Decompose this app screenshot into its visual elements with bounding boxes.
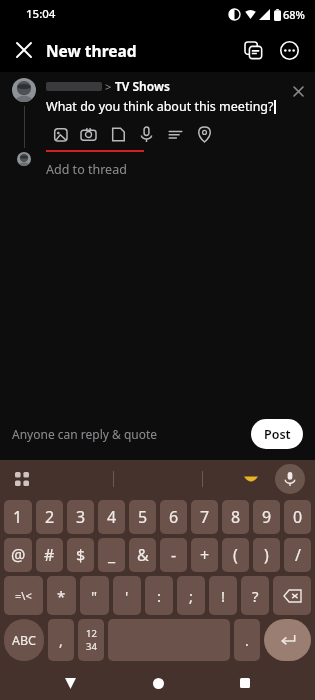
button[interactable]: 0 xyxy=(284,500,311,534)
button[interactable]: Post xyxy=(251,419,303,449)
button[interactable]: Back xyxy=(53,666,87,700)
staticText: 0 xyxy=(293,506,303,528)
button[interactable]: ? xyxy=(241,576,269,615)
button[interactable]: Backspace xyxy=(273,576,311,615)
staticText: 12 xyxy=(86,627,97,640)
staticText: + xyxy=(200,544,210,566)
button[interactable]: ! xyxy=(209,576,237,615)
staticText: 5 xyxy=(138,506,148,528)
staticText: @ xyxy=(11,544,26,566)
staticText: 15:04 xyxy=(26,6,56,22)
staticText: ' xyxy=(125,586,129,606)
button[interactable]: # xyxy=(36,538,63,572)
staticText: ? xyxy=(252,586,259,606)
button[interactable]: 6 xyxy=(160,500,187,534)
staticText: ; xyxy=(189,586,194,606)
button[interactable]: / xyxy=(284,538,311,572)
staticText: , xyxy=(59,631,63,650)
staticText: 6 xyxy=(169,506,179,528)
staticText: Post xyxy=(264,426,291,443)
button[interactable]: Location xyxy=(191,121,217,147)
staticText: New thread xyxy=(46,40,137,61)
button[interactable]: More options xyxy=(273,34,305,66)
staticText: 8 xyxy=(231,506,241,528)
staticText: & xyxy=(137,544,149,566)
button[interactable]: ABC xyxy=(4,619,44,661)
button[interactable]: Anyone can reply & quote xyxy=(12,426,158,442)
button[interactable]: + xyxy=(191,538,218,572)
button[interactable]: Recents xyxy=(228,666,262,700)
staticText: _ xyxy=(108,544,116,566)
button[interactable]: Emoji xyxy=(239,467,263,491)
button[interactable]: - xyxy=(160,538,187,572)
button[interactable]: Remove xyxy=(287,80,309,102)
button[interactable]: Poll xyxy=(162,121,188,147)
staticText: 4 xyxy=(107,506,117,528)
staticText: $ xyxy=(76,544,86,566)
button[interactable]: 2 xyxy=(36,500,63,534)
button[interactable]: $ xyxy=(67,538,94,572)
staticText: What do you think about this meeting? xyxy=(46,98,274,115)
staticText: 3 xyxy=(76,506,86,528)
button[interactable]: . xyxy=(234,619,260,661)
button[interactable]: Enter xyxy=(264,619,311,661)
button[interactable]: 3 xyxy=(67,500,94,534)
staticText: > xyxy=(105,79,112,94)
staticText: # xyxy=(44,544,55,566)
button[interactable]: ; xyxy=(177,576,205,615)
staticText: 1 xyxy=(13,506,23,528)
staticText: TV Shows xyxy=(115,78,170,94)
button[interactable]: 4 xyxy=(98,500,125,534)
staticText: =\< xyxy=(15,588,32,603)
button[interactable]: ) xyxy=(253,538,280,572)
button[interactable]: Keyboard options xyxy=(8,465,36,493)
button[interactable]: , xyxy=(48,619,74,661)
staticText: 9 xyxy=(262,506,272,528)
button[interactable]: 1 xyxy=(4,500,32,534)
button[interactable]: 7 xyxy=(191,500,218,534)
staticText: 2 xyxy=(45,506,55,528)
button[interactable]: * xyxy=(47,576,76,615)
button[interactable]: ' xyxy=(113,576,141,615)
button[interactable]: Photo xyxy=(46,121,72,147)
button[interactable]: ( xyxy=(222,538,249,572)
button[interactable]: Camera xyxy=(75,121,101,147)
button[interactable]: Drafts xyxy=(237,34,269,66)
staticText: : xyxy=(157,586,162,606)
button[interactable]: " xyxy=(80,576,109,615)
staticText: ) xyxy=(264,544,269,566)
staticText: 68% xyxy=(283,7,305,22)
button[interactable]: 8 xyxy=(222,500,249,534)
staticText: / xyxy=(295,544,301,566)
button[interactable]: Close xyxy=(8,34,40,66)
staticText: 7 xyxy=(200,506,210,528)
staticText: ABC xyxy=(12,632,37,649)
button[interactable]: _ xyxy=(98,538,125,572)
button[interactable]: =\< xyxy=(4,576,43,615)
staticText: * xyxy=(57,586,66,606)
staticText: " xyxy=(91,586,98,606)
button[interactable]: 5 xyxy=(129,500,156,534)
staticText: ! xyxy=(221,586,226,606)
staticText: ( xyxy=(233,544,238,566)
button[interactable]: Voice input xyxy=(275,464,305,494)
button[interactable]: @ xyxy=(4,538,32,572)
button[interactable]: : xyxy=(145,576,173,615)
button[interactable]: GIF xyxy=(104,121,130,147)
button[interactable]: 9 xyxy=(253,500,280,534)
button[interactable]: Add to thread xyxy=(46,161,127,178)
button[interactable]: & xyxy=(129,538,156,572)
button[interactable]: 12 xyxy=(78,619,104,661)
staticText: - xyxy=(171,544,177,566)
staticText: . xyxy=(245,631,249,650)
staticText: 34 xyxy=(86,640,97,653)
button[interactable]: Home xyxy=(141,666,175,700)
button[interactable]: Audio xyxy=(133,121,159,147)
